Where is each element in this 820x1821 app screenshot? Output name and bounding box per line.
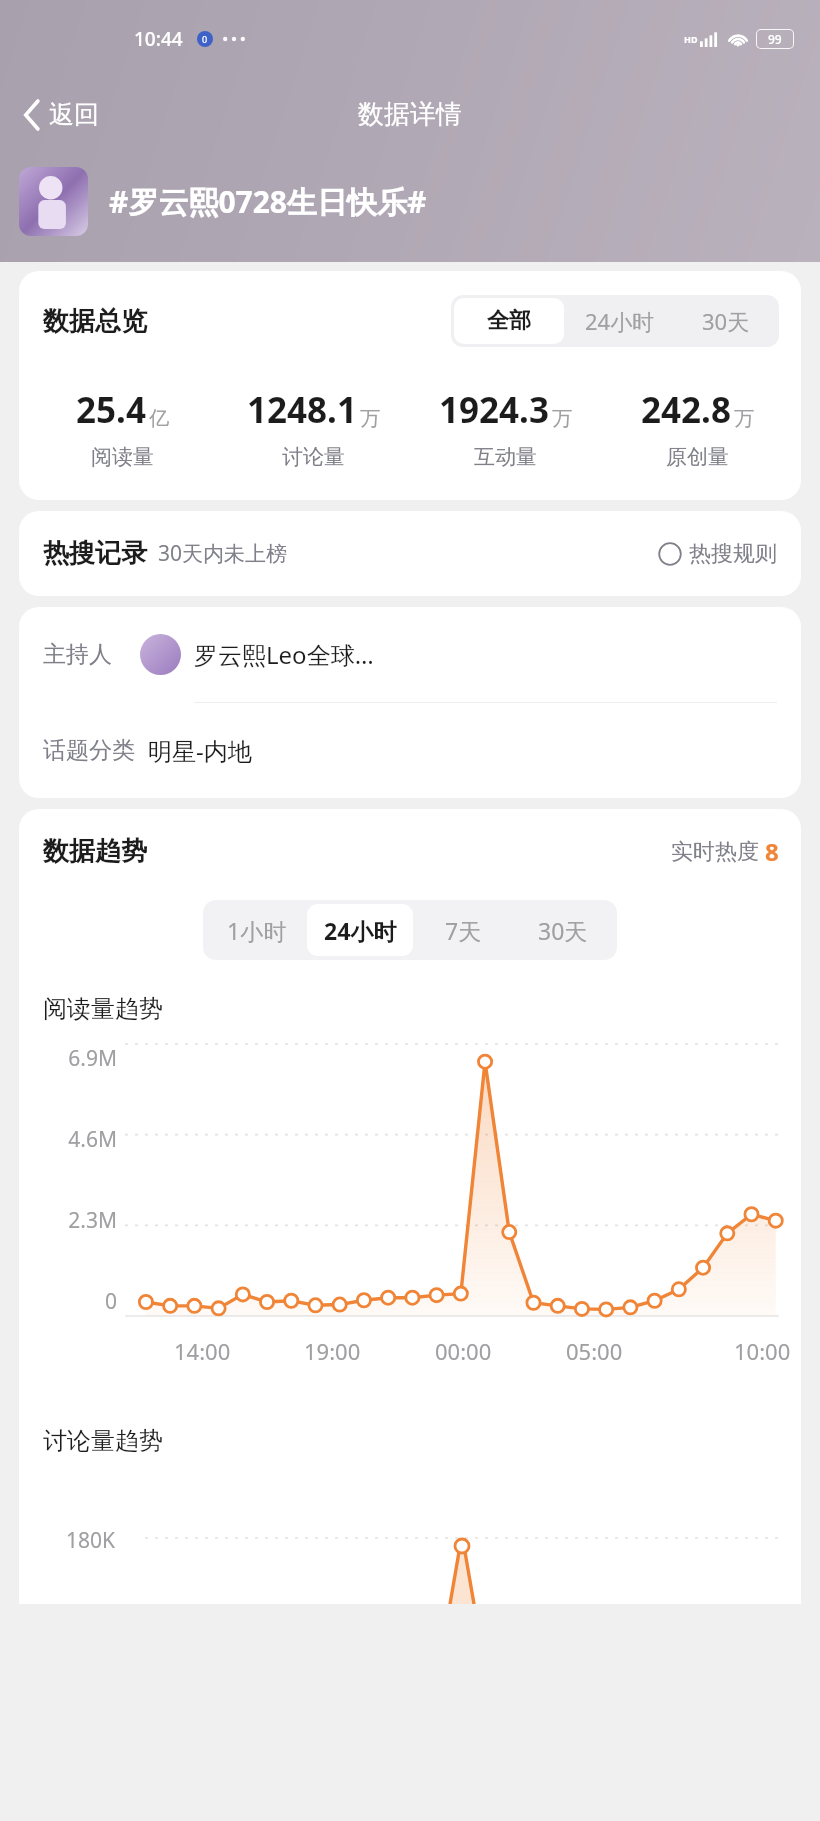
staticText: 7天: [445, 915, 482, 946]
staticText: #罗云熙0728生日快乐#: [109, 181, 427, 222]
staticText: 4.6M: [68, 1125, 117, 1154]
staticText: 原创量: [666, 444, 729, 470]
staticText: 242.8: [641, 386, 731, 434]
staticText: 10:00: [734, 1336, 791, 1366]
button[interactable]: 主持人: [43, 607, 801, 702]
staticText: 0: [202, 33, 208, 45]
staticText: 19:00: [304, 1336, 361, 1366]
staticText: 话题分类: [43, 736, 135, 765]
staticText: 99: [768, 31, 782, 47]
staticText: 返回: [49, 99, 99, 130]
staticText: 30天: [702, 306, 750, 336]
button[interactable]: 24小时: [564, 298, 676, 344]
staticText: 热搜规则: [689, 540, 777, 568]
button[interactable]: 30天: [513, 904, 613, 956]
staticText: 00:00: [435, 1336, 492, 1366]
staticText: 05:00: [566, 1336, 623, 1366]
staticText: 数据总览: [43, 305, 147, 338]
button[interactable]: 24小时: [307, 904, 413, 956]
staticText: 1248.1: [247, 386, 357, 434]
staticText: 万: [552, 406, 572, 431]
button[interactable]: #罗云熙0728生日快乐#: [19, 167, 427, 236]
staticText: 10:44: [134, 26, 183, 52]
staticText: 阅读量趋势: [43, 994, 163, 1024]
staticText: 180K: [66, 1526, 116, 1555]
staticText: 24小时: [585, 306, 655, 336]
staticText: 万: [360, 406, 380, 431]
button[interactable]: 返回: [18, 93, 105, 136]
button[interactable]: 实时热度: [671, 835, 779, 868]
button[interactable]: 话题分类: [43, 703, 801, 798]
staticText: 亿: [149, 406, 169, 431]
staticText: HD: [684, 33, 698, 45]
staticText: 互动量: [474, 444, 537, 470]
staticText: 热搜记录: [43, 537, 147, 570]
button[interactable]: 热搜规则: [656, 536, 779, 572]
staticText: 30天内未上榜: [158, 539, 288, 568]
staticText: 1小时: [227, 915, 287, 946]
staticText: 主持人: [43, 640, 112, 669]
staticText: 罗云熙Leo全球…: [194, 638, 374, 671]
button[interactable]: 242.8: [601, 386, 793, 470]
staticText: 数据趋势: [43, 835, 147, 868]
staticText: 6.9M: [68, 1044, 117, 1073]
button[interactable]: 全部: [454, 298, 564, 344]
staticText: 万: [734, 406, 754, 431]
staticText: 2.3M: [68, 1206, 117, 1235]
button[interactable]: 1小时: [207, 904, 307, 956]
button[interactable]: 25.4: [27, 386, 218, 470]
staticText: 阅读量: [91, 444, 154, 470]
staticText: 讨论量趋势: [43, 1426, 163, 1456]
staticText: 14:00: [174, 1336, 231, 1366]
staticText: 讨论量: [282, 444, 345, 470]
staticText: 全部: [487, 307, 531, 335]
staticText: 数据详情: [358, 98, 462, 131]
staticText: 明星-内地: [148, 734, 252, 767]
staticText: 0: [104, 1287, 117, 1316]
button[interactable]: 1248.1: [218, 386, 409, 470]
staticText: 24小时: [324, 915, 397, 946]
button[interactable]: 1924.3: [409, 386, 601, 470]
staticText: 8: [765, 835, 779, 868]
staticText: 30天: [538, 915, 588, 946]
button[interactable]: 7天: [413, 904, 513, 956]
staticText: 25.4: [76, 386, 146, 434]
staticText: 1924.3: [439, 386, 549, 434]
button[interactable]: 30天: [676, 298, 776, 344]
staticText: 实时热度: [671, 838, 759, 866]
